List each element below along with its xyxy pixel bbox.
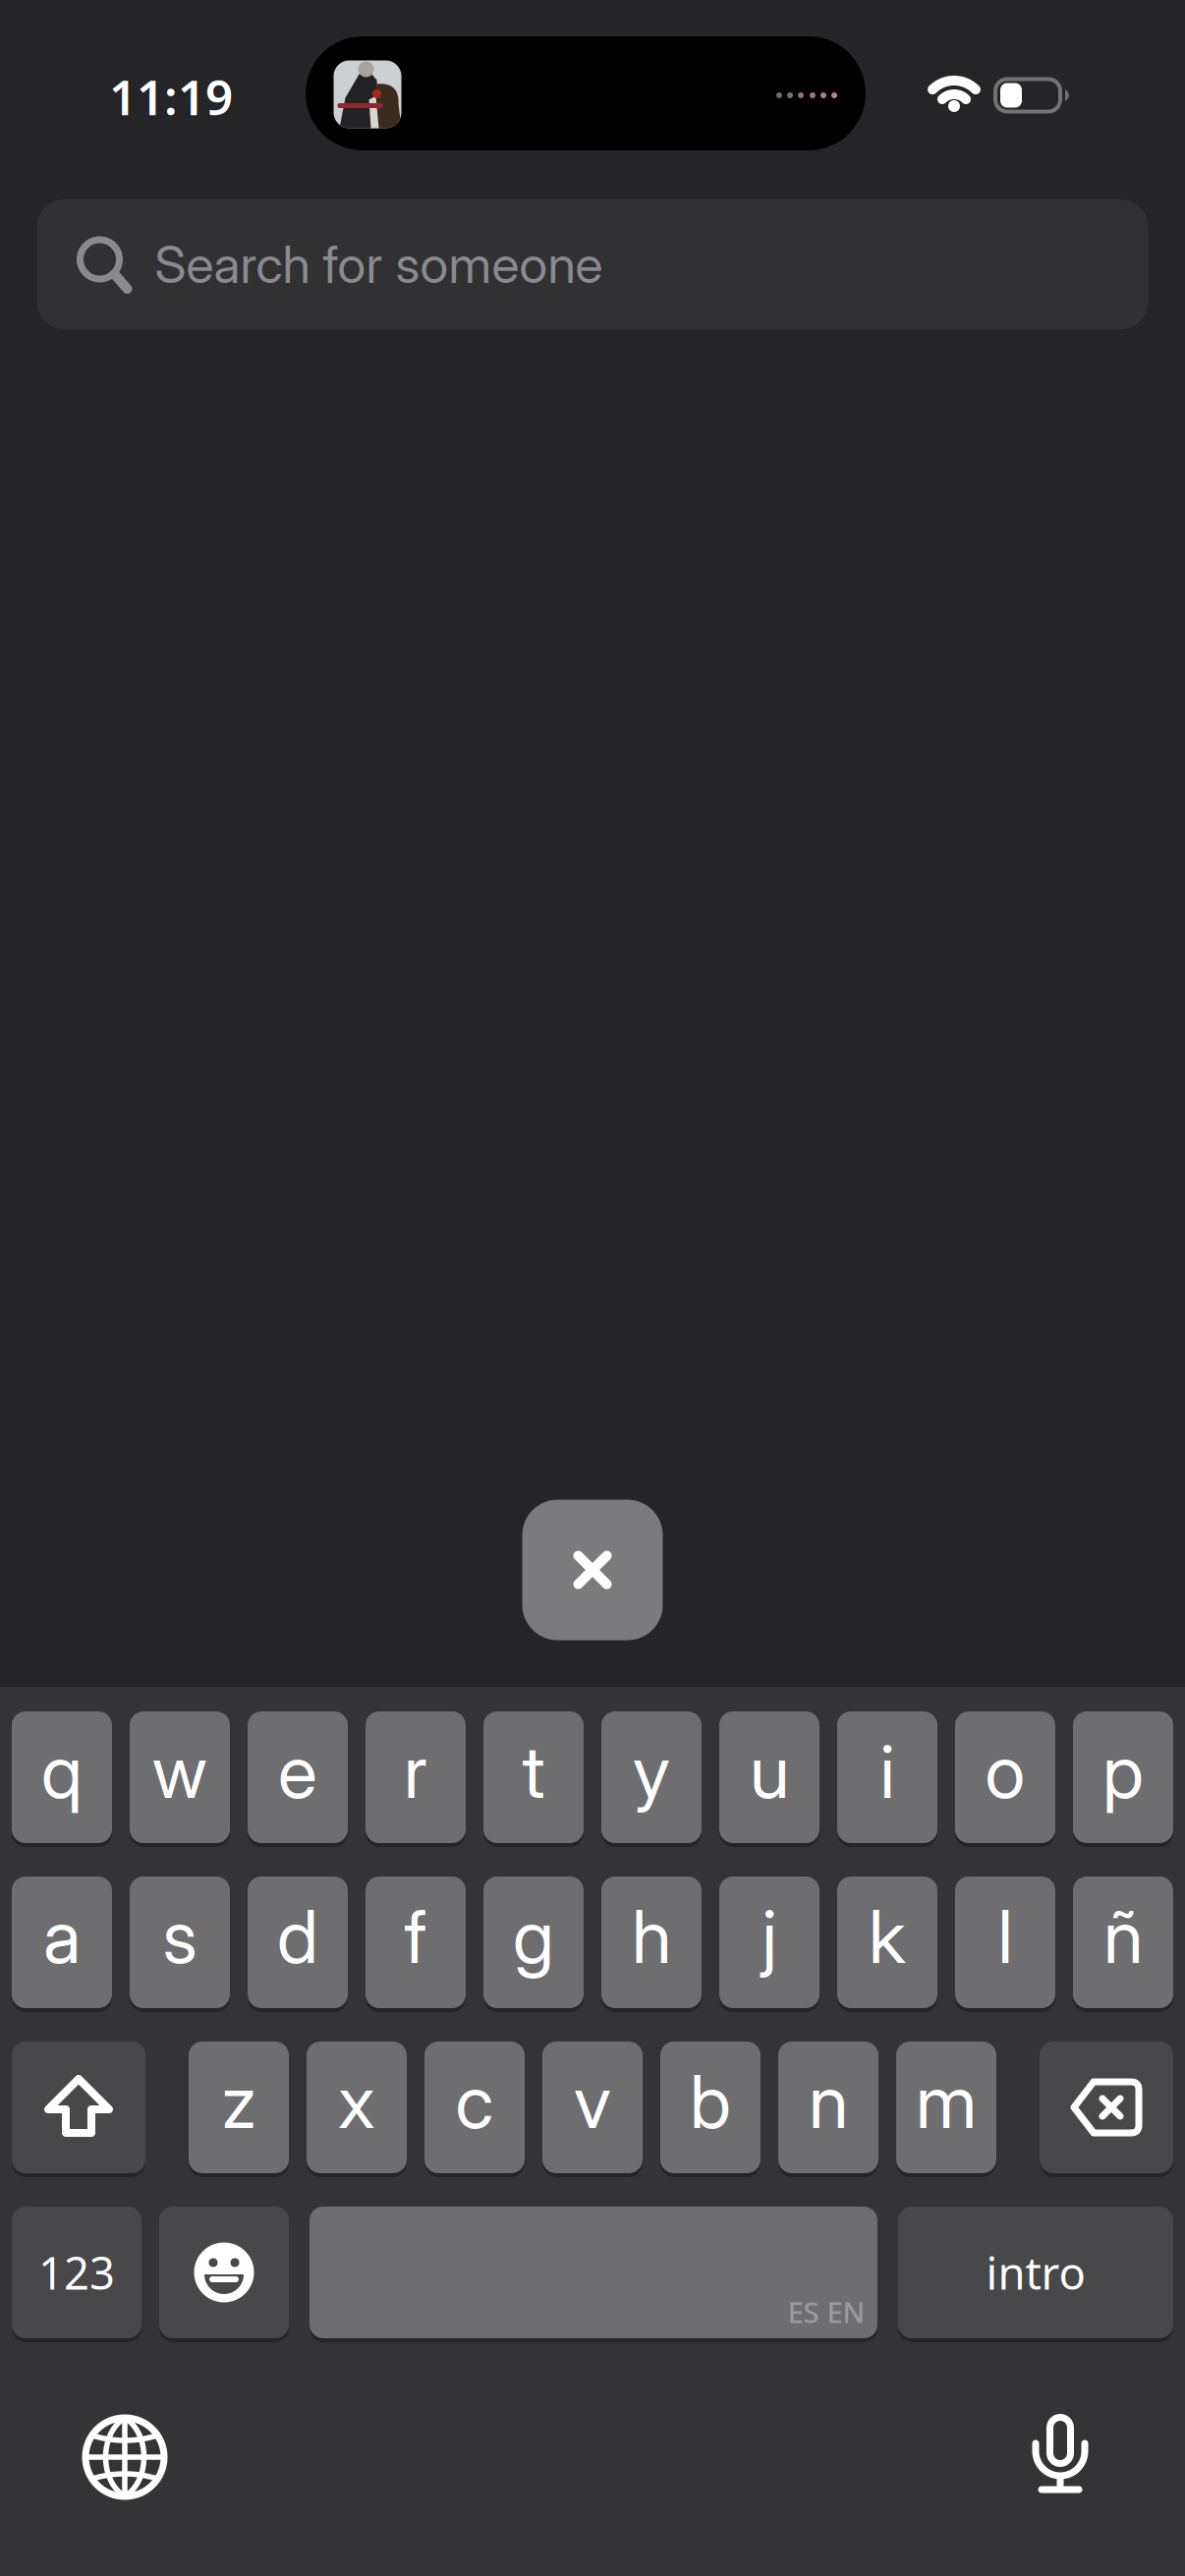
staticText: r <box>404 1727 427 1815</box>
button[interactable]: x <box>307 2042 407 2173</box>
button[interactable]: y <box>601 1711 702 1843</box>
button[interactable]: Emoji <box>159 2207 289 2338</box>
staticText: s <box>163 1892 197 1980</box>
staticText: m <box>916 2057 977 2145</box>
button[interactable]: h <box>601 1876 702 2008</box>
button[interactable]: Space <box>310 2207 877 2338</box>
staticText: x <box>338 2057 375 2145</box>
staticText: t <box>522 1727 545 1815</box>
button[interactable]: f <box>366 1876 466 2008</box>
staticText: d <box>277 1892 318 1980</box>
button[interactable]: z <box>189 2042 289 2173</box>
button[interactable]: v <box>542 2042 643 2173</box>
staticText: Search for someone <box>155 233 603 295</box>
button[interactable]: c <box>424 2042 525 2173</box>
button[interactable]: ñ <box>1073 1876 1173 2008</box>
button[interactable]: Search for someone <box>37 199 1148 329</box>
button[interactable]: Delete <box>1040 2042 1173 2173</box>
staticText: n <box>809 2057 848 2145</box>
button[interactable]: s <box>130 1876 230 2008</box>
button[interactable]: m <box>896 2042 996 2173</box>
button[interactable]: Shift <box>12 2042 145 2173</box>
staticText: l <box>998 1892 1013 1980</box>
staticText: g <box>513 1892 554 1980</box>
staticText: ES EN <box>788 2293 865 2331</box>
button[interactable]: l <box>955 1876 1055 2008</box>
staticText: q <box>41 1727 83 1815</box>
staticText: i <box>880 1727 895 1815</box>
staticText: b <box>690 2057 731 2145</box>
staticText: y <box>633 1727 670 1815</box>
button[interactable]: intro <box>898 2207 1173 2338</box>
button[interactable]: e <box>248 1711 348 1843</box>
button[interactable]: n <box>778 2042 878 2173</box>
staticText: u <box>750 1727 789 1815</box>
staticText: w <box>152 1727 207 1815</box>
button[interactable]: d <box>248 1876 348 2008</box>
staticText: h <box>632 1892 671 1980</box>
button[interactable]: Numbers <box>12 2207 141 2338</box>
button[interactable]: Next keyboard <box>76 2408 174 2506</box>
button[interactable]: k <box>837 1876 937 2008</box>
button[interactable]: j <box>719 1876 819 2008</box>
button[interactable]: Dictation <box>1011 2410 1109 2508</box>
staticText: c <box>455 2057 494 2145</box>
button[interactable]: r <box>366 1711 466 1843</box>
staticText: f <box>404 1892 427 1980</box>
staticText: j <box>762 1892 777 1980</box>
button[interactable]: w <box>130 1711 230 1843</box>
staticText: k <box>869 1892 906 1980</box>
staticText: o <box>985 1727 1025 1815</box>
staticText: 11:19 <box>109 64 233 128</box>
staticText: intro <box>986 2243 1085 2302</box>
button[interactable]: i <box>837 1711 937 1843</box>
button[interactable]: u <box>719 1711 819 1843</box>
button[interactable]: q <box>12 1711 112 1843</box>
button[interactable]: a <box>12 1876 112 2008</box>
button[interactable]: o <box>955 1711 1055 1843</box>
staticText: a <box>43 1892 81 1980</box>
staticText: v <box>574 2057 611 2145</box>
button[interactable]: g <box>483 1876 584 2008</box>
button[interactable]: b <box>660 2042 761 2173</box>
button[interactable]: Close <box>522 1500 663 1640</box>
staticText: 123 <box>38 2243 115 2302</box>
staticText: e <box>278 1727 317 1815</box>
staticText: z <box>222 2057 256 2145</box>
button[interactable]: p <box>1073 1711 1173 1843</box>
staticText: ñ <box>1103 1892 1143 1980</box>
staticText: p <box>1102 1727 1144 1815</box>
button[interactable]: t <box>483 1711 584 1843</box>
